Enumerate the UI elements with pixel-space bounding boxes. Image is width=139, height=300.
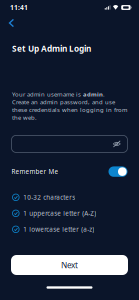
staticText: Remember Me: [11, 167, 58, 176]
staticText: 1 lowercase letter (a-z): [23, 225, 94, 234]
staticText: 11:41: [10, 3, 28, 12]
button[interactable]: Back: [5, 16, 18, 30]
staticText: Your admin username is admin. Create an …: [12, 90, 127, 121]
staticText: 1 uppercase letter (A-Z): [23, 209, 96, 218]
button[interactable]: Show password: [113, 140, 120, 147]
staticText: 10-32 characters: [23, 193, 75, 202]
button[interactable]: Next: [11, 255, 128, 275]
button[interactable]: Remember Me: [108, 166, 127, 177]
staticText: Set Up Admin Login: [12, 43, 91, 54]
staticText: Next: [61, 259, 78, 271]
